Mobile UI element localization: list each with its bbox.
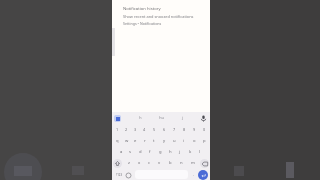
staticText: Settings • Notifications (123, 21, 162, 26)
button[interactable]: p (199, 135, 209, 146)
staticText: w (125, 138, 129, 144)
button[interactable]: 7 (169, 124, 179, 135)
button[interactable]: u (169, 135, 179, 146)
button[interactable]: h (165, 146, 175, 157)
staticText: 6 (163, 127, 166, 132)
button[interactable]: b (165, 157, 176, 169)
button[interactable]: o (189, 135, 199, 146)
button[interactable]: n (176, 157, 187, 169)
staticText: g (159, 149, 162, 155)
button[interactable]: m (187, 157, 198, 169)
button[interactable]: Notification history (112, 0, 210, 30)
button[interactable]: hu (150, 112, 174, 124)
button[interactable]: Voice input (198, 113, 208, 123)
staticText: v (158, 160, 161, 166)
staticText: l (199, 149, 201, 155)
staticText: h (139, 115, 142, 121)
button[interactable]: k (185, 146, 195, 157)
staticText: 3 (134, 127, 137, 132)
staticText: y (163, 138, 166, 144)
staticText: x (138, 160, 141, 166)
staticText: r (144, 138, 146, 144)
button[interactable]: t (149, 135, 159, 146)
button[interactable]: f (145, 146, 155, 157)
staticText: u (173, 138, 176, 144)
staticText: 7 (173, 127, 176, 132)
staticText: p (203, 138, 206, 144)
staticText: a (120, 149, 123, 155)
button[interactable]: ?123 (114, 170, 124, 180)
button[interactable]: 8 (179, 124, 189, 135)
button[interactable]: w (122, 135, 131, 146)
staticText: j (179, 149, 181, 155)
button[interactable]: i (179, 135, 189, 146)
staticText: 4 (143, 127, 146, 132)
staticText: t (153, 138, 155, 144)
staticText: j (182, 115, 184, 121)
button[interactable]: 6 (159, 124, 169, 135)
staticText: Notification history (123, 6, 161, 12)
button[interactable]: 2 (122, 124, 131, 135)
button[interactable]: Emoji (124, 170, 133, 180)
button[interactable]: z (124, 157, 134, 169)
staticText: Show recent and snoozed notifications (123, 14, 194, 19)
staticText: . (193, 172, 195, 178)
button[interactable]: s (126, 146, 135, 157)
button[interactable]: Shift (113, 159, 122, 168)
staticText: k (189, 149, 192, 155)
button[interactable]: y (159, 135, 169, 146)
button[interactable]: Enter (198, 170, 208, 180)
staticText: d (139, 149, 142, 155)
button[interactable]: 9 (189, 124, 199, 135)
button[interactable]: Backspace (200, 159, 209, 168)
staticText: s (129, 149, 132, 155)
staticText: h (169, 149, 172, 155)
button[interactable]: 3 (131, 124, 140, 135)
button[interactable]: h (130, 112, 150, 124)
staticText: 2 (125, 127, 128, 132)
staticText: i (183, 138, 185, 144)
staticText: q (116, 138, 119, 144)
button[interactable]: a (117, 146, 126, 157)
button[interactable]: r (140, 135, 149, 146)
button[interactable]: v (154, 157, 165, 169)
button[interactable]: j (175, 146, 185, 157)
button[interactable]: 0 (199, 124, 209, 135)
button[interactable]: e (131, 135, 140, 146)
button[interactable]: Gboard menu (114, 115, 121, 122)
staticText: c (148, 160, 151, 166)
button[interactable]: c (144, 157, 154, 169)
button[interactable]: 1 (113, 124, 122, 135)
staticText: 0 (203, 127, 206, 132)
button[interactable]: l (195, 146, 205, 157)
staticText: 9 (193, 127, 196, 132)
staticText: m (191, 160, 195, 166)
button[interactable]: 5 (149, 124, 159, 135)
staticText: b (169, 160, 172, 166)
button[interactable]: j (174, 112, 192, 124)
staticText: n (180, 160, 183, 166)
staticText: hu (159, 115, 165, 121)
staticText: o (193, 138, 196, 144)
staticText: 1 (116, 127, 119, 132)
staticText: f (149, 149, 151, 155)
staticText: 8 (183, 127, 186, 132)
button[interactable]: d (135, 146, 145, 157)
button[interactable]: x (134, 157, 144, 169)
button[interactable]: q (113, 135, 122, 146)
staticText: 5 (153, 127, 156, 132)
staticText: ?123 (116, 173, 123, 177)
staticText: z (128, 160, 130, 166)
button[interactable]: g (155, 146, 165, 157)
staticText: e (134, 138, 137, 144)
button[interactable]: 4 (140, 124, 149, 135)
